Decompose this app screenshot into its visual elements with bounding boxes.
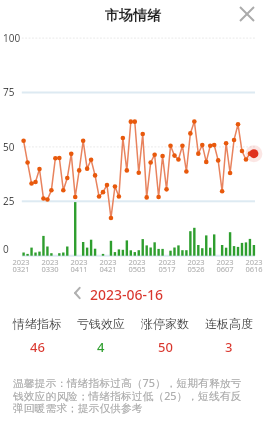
button[interactable]: Close [236, 3, 258, 25]
staticText: 0411 [66, 264, 92, 274]
staticText: 0 [3, 242, 9, 256]
staticText: 2023 [95, 257, 121, 267]
staticText: 2023 [8, 257, 34, 267]
staticText: 0421 [95, 264, 121, 274]
staticText: 3 [225, 338, 233, 356]
staticText: 2023-06-16 [90, 285, 164, 301]
staticText: 2023 [241, 257, 266, 267]
staticText: 2023 [212, 257, 238, 267]
button[interactable]: 涨停家数 [133, 316, 197, 356]
staticText: 0330 [37, 264, 63, 274]
staticText: 市场情绪 [0, 7, 266, 25]
staticText: 2023 [66, 257, 92, 267]
staticText: 0616 [241, 264, 266, 274]
staticText: 0517 [154, 264, 180, 274]
staticText: 涨停家数 [141, 316, 189, 331]
staticText: 4 [97, 338, 105, 356]
staticText: 2023 [183, 257, 209, 267]
staticText: 25 [3, 194, 15, 208]
staticText: 连板高度 [205, 316, 253, 331]
staticText: 0607 [212, 264, 238, 274]
staticText: 0321 [8, 264, 34, 274]
staticText: 情绪指标 [13, 316, 61, 331]
staticText: 2023 [124, 257, 150, 267]
button[interactable]: 连板高度 [197, 316, 261, 356]
staticText: 75 [3, 85, 15, 99]
staticText: 50 [158, 338, 173, 356]
staticText: 0505 [124, 264, 150, 274]
staticText: 100 [3, 31, 21, 45]
button[interactable]: 情绪指标 [5, 316, 69, 356]
staticText: 2023 [154, 257, 180, 267]
staticText: 0526 [183, 264, 209, 274]
button[interactable]: 亏钱效应 [69, 316, 133, 356]
staticText: 温馨提示：情绪指标过高（75），短期有释放亏钱效应的风险；情绪指标过低（25），… [13, 375, 248, 415]
staticText: 亏钱效应 [77, 316, 125, 331]
staticText: 50 [3, 140, 15, 154]
staticText: 46 [30, 338, 45, 356]
staticText: 2023 [37, 257, 63, 267]
button[interactable]: Previous day [71, 286, 85, 300]
